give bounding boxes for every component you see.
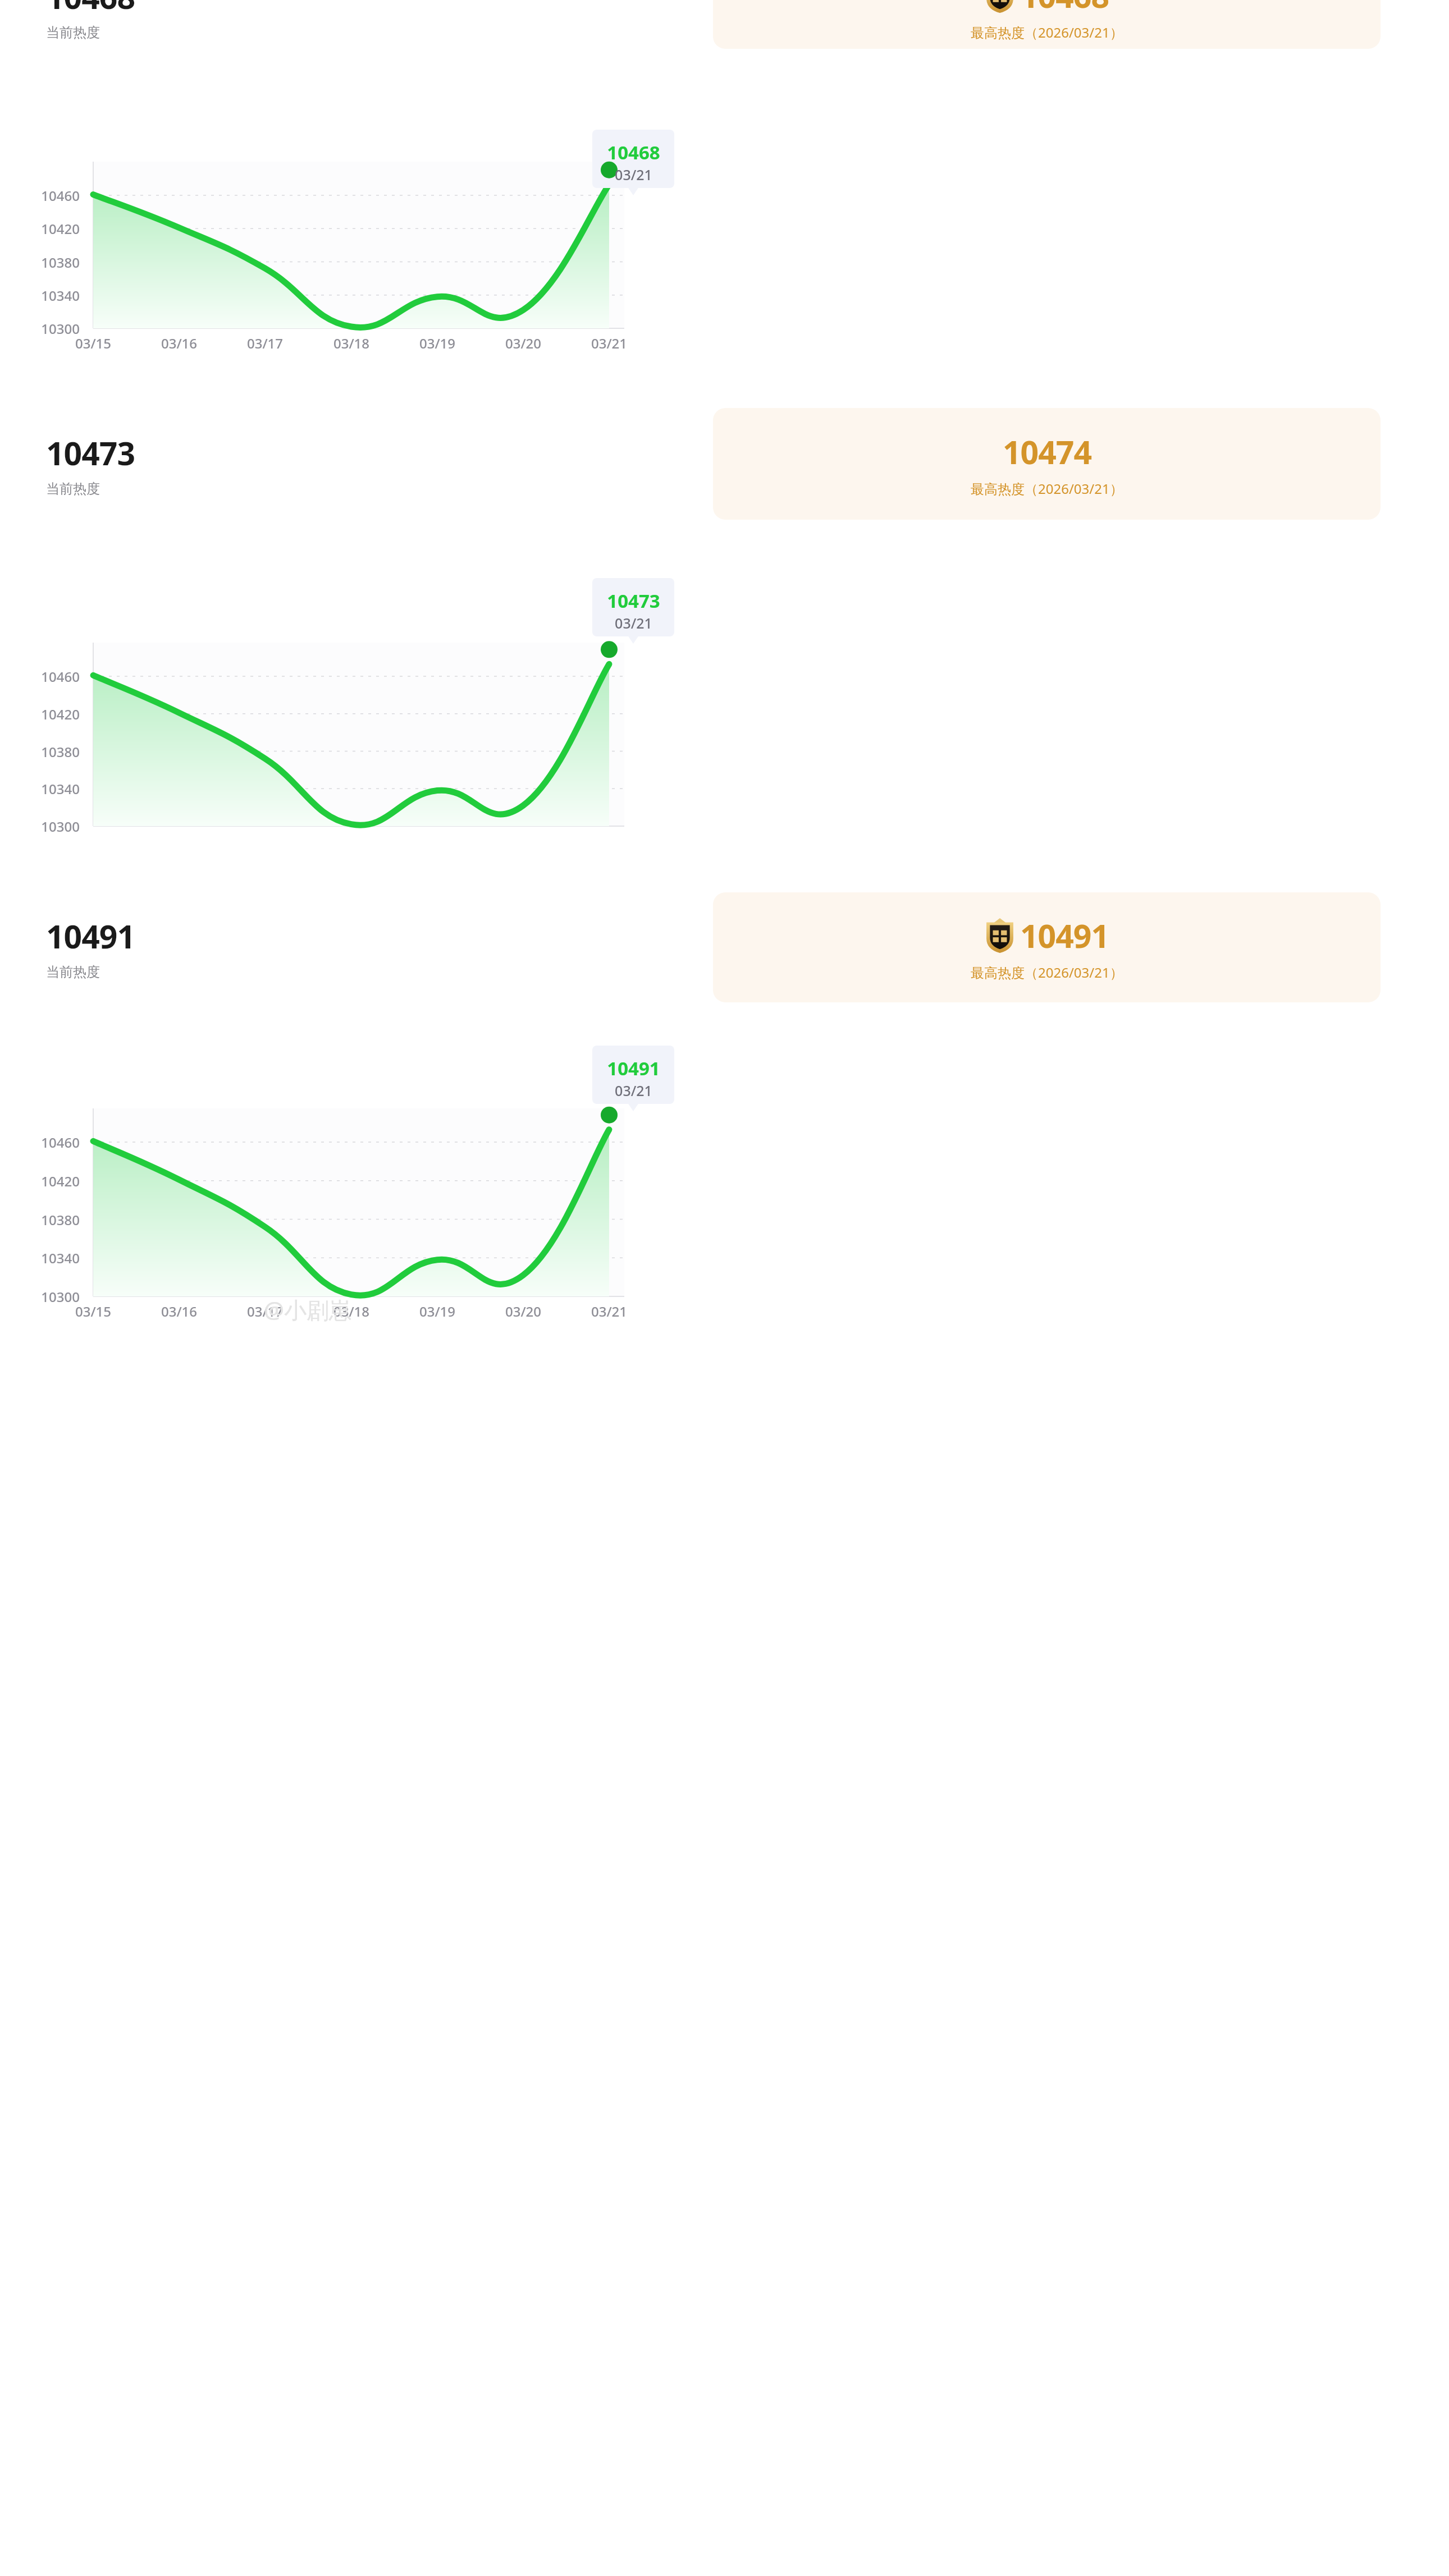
- staticText: 10491: [607, 1056, 660, 1081]
- staticText: 最高热度（2026/03/21）: [971, 479, 1123, 498]
- staticText: 最高热度（2026/03/21）: [971, 963, 1123, 982]
- staticText: 10468: [1020, 0, 1109, 17]
- staticText: 10468: [46, 0, 135, 19]
- button[interactable]: 10491: [592, 1046, 674, 1104]
- staticText: 03/18: [329, 1302, 374, 1321]
- staticText: 03/16: [157, 1302, 202, 1321]
- button[interactable]: 荣誉殿堂徽章: [713, 892, 1381, 1002]
- staticText: 03/18: [329, 334, 374, 352]
- button[interactable]: 10473: [592, 578, 674, 636]
- staticText: 10491: [1020, 914, 1109, 957]
- staticText: 10380: [12, 742, 80, 761]
- staticText: 03/17: [243, 1302, 287, 1321]
- staticText: 10380: [12, 1211, 80, 1229]
- other: 荣誉殿堂徽章: [985, 918, 1014, 953]
- staticText: 10340: [12, 286, 80, 305]
- staticText: 03/21: [615, 613, 652, 632]
- staticText: 03/20: [501, 334, 546, 352]
- button[interactable]: 10474: [713, 408, 1381, 520]
- staticText: 10473: [46, 431, 135, 475]
- other: 荣誉殿堂徽章: [985, 0, 1014, 13]
- staticText: 当前热度: [46, 24, 100, 41]
- staticText: 03/20: [501, 1302, 546, 1321]
- staticText: 03/21: [587, 334, 632, 352]
- staticText: 03/15: [71, 1302, 116, 1321]
- staticText: 03/21: [615, 165, 652, 184]
- staticText: 10460: [12, 186, 80, 205]
- staticText: 03/15: [71, 334, 116, 352]
- staticText: 10474: [1003, 430, 1092, 474]
- staticText: 10460: [12, 1133, 80, 1152]
- button[interactable]: 10468: [34, 0, 701, 49]
- staticText: 03/19: [415, 334, 460, 352]
- staticText: 10300: [12, 1287, 80, 1306]
- staticText: 当前热度: [46, 964, 100, 980]
- staticText: 10473: [607, 588, 660, 613]
- staticText: 10460: [12, 667, 80, 686]
- staticText: 10300: [12, 817, 80, 836]
- button[interactable]: 10473: [34, 408, 701, 520]
- staticText: 最高热度（2026/03/21）: [971, 23, 1123, 42]
- staticText: 10420: [12, 1172, 80, 1190]
- staticText: 10420: [12, 705, 80, 723]
- staticText: 10300: [12, 319, 80, 338]
- staticText: 03/21: [615, 1081, 652, 1100]
- staticText: 当前热度: [46, 480, 100, 497]
- staticText: 03/19: [415, 1302, 460, 1321]
- staticText: 10340: [12, 1249, 80, 1267]
- staticText: 10340: [12, 780, 80, 798]
- staticText: 10468: [607, 140, 660, 165]
- staticText: 10380: [12, 253, 80, 272]
- staticText: 10420: [12, 219, 80, 238]
- staticText: @小剧崽: [264, 1294, 351, 1325]
- button[interactable]: 10468: [592, 130, 674, 188]
- button[interactable]: 10491: [34, 892, 701, 1002]
- staticText: 03/17: [243, 334, 287, 352]
- staticText: 03/21: [587, 1302, 632, 1321]
- button[interactable]: 荣誉殿堂徽章: [713, 0, 1381, 49]
- staticText: 03/16: [157, 334, 202, 352]
- staticText: 10491: [46, 914, 135, 958]
